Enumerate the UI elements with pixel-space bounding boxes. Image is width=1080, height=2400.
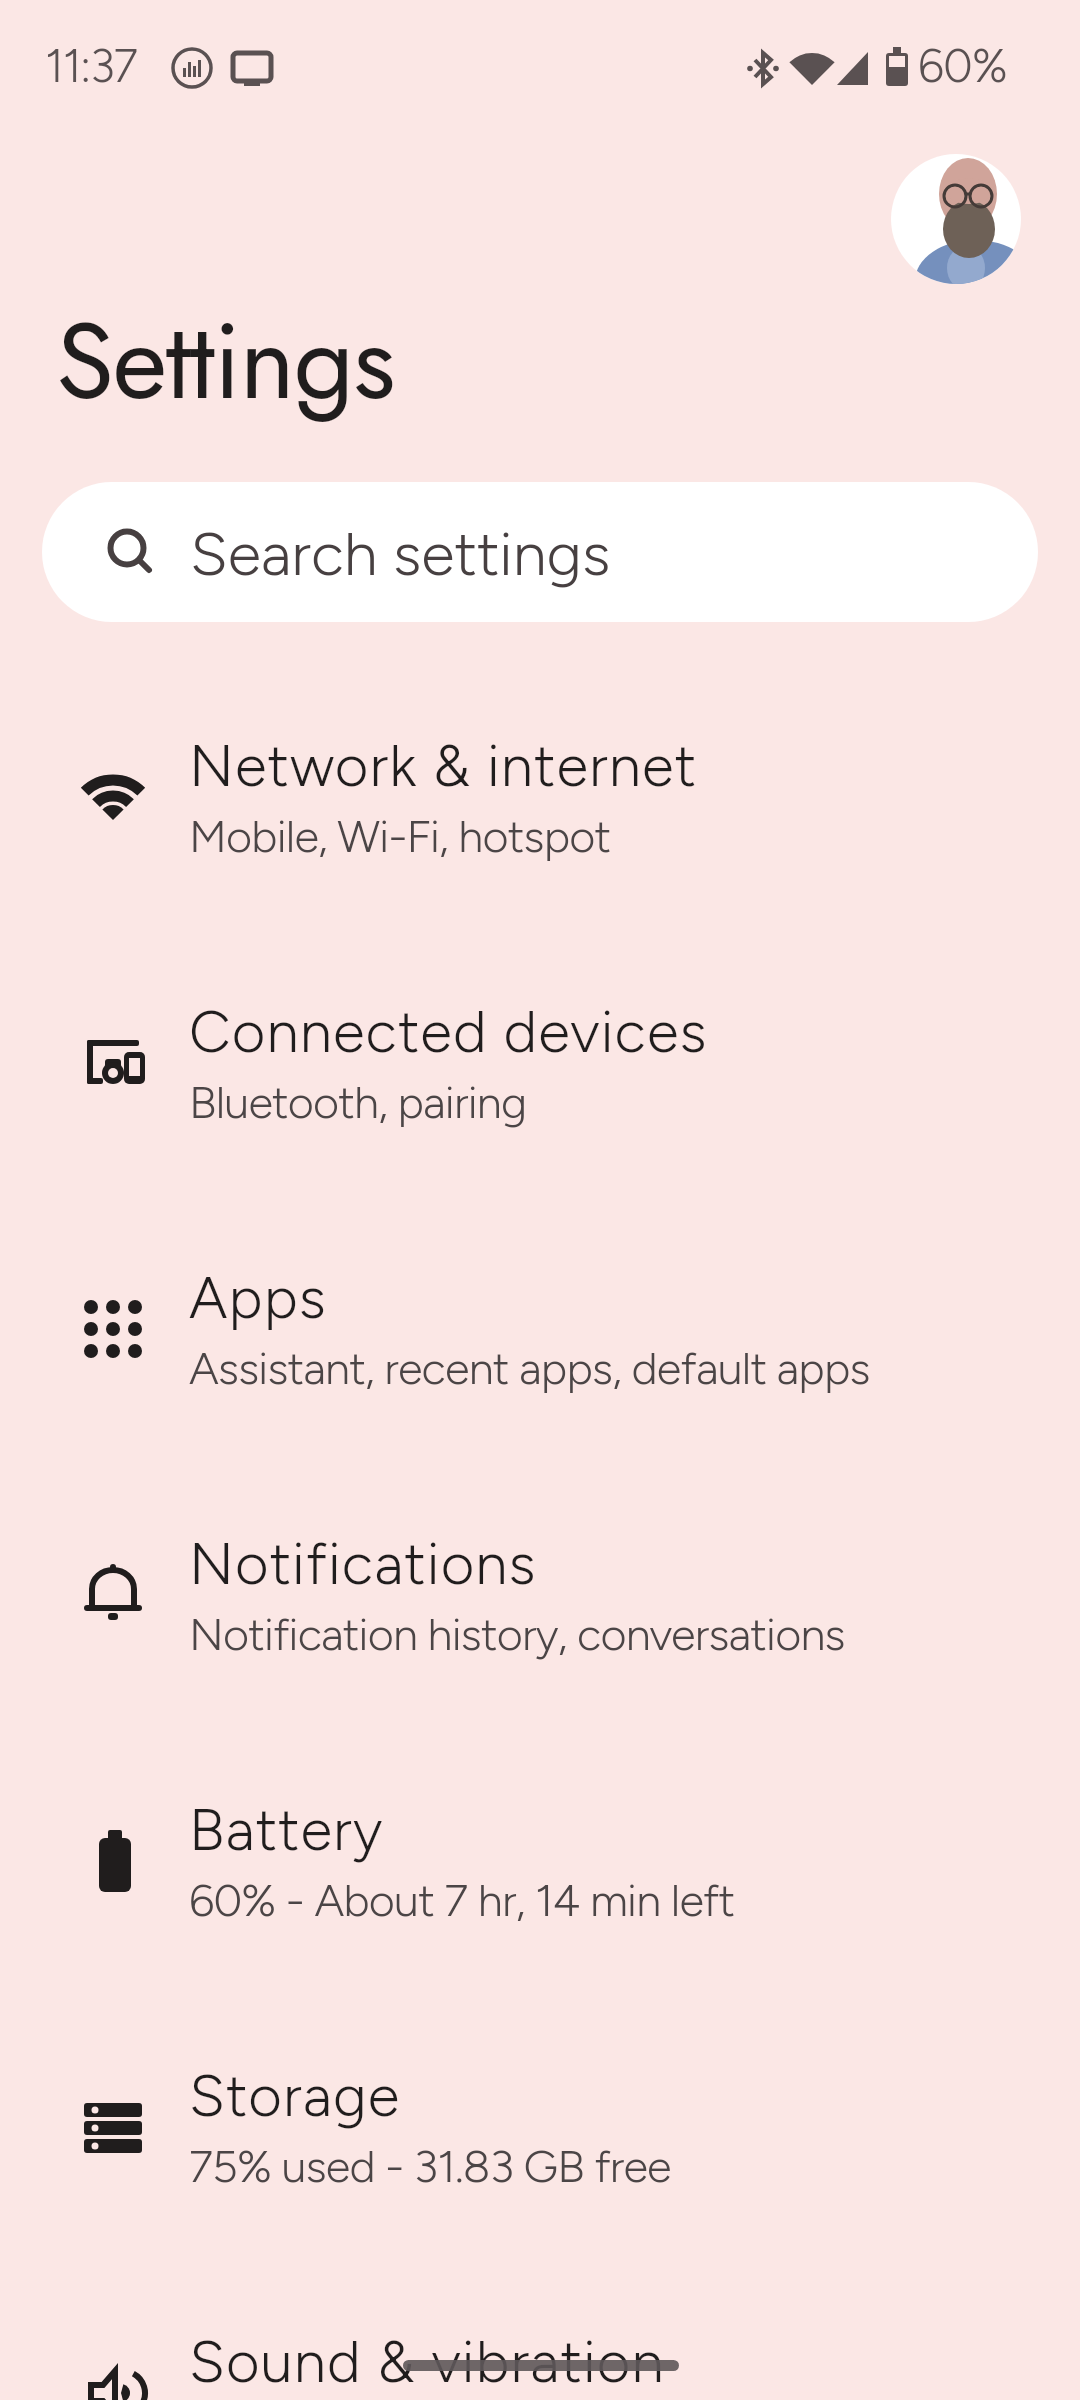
button[interactable]: Connected devices	[0, 930, 1080, 1196]
staticText: Settings	[56, 285, 394, 438]
staticText: Notification history, conversations	[189, 1607, 845, 1661]
button[interactable]: Search settings	[42, 482, 1038, 622]
staticText: Apps	[189, 1263, 327, 1333]
button[interactable]: Notifications	[0, 1462, 1080, 1728]
staticText: Mobile, Wi-Fi, hotspot	[189, 809, 611, 863]
staticText: 60%	[918, 38, 1008, 93]
staticText: 11:37	[45, 38, 137, 93]
button[interactable]: Network & internet	[0, 664, 1080, 930]
staticText: Bluetooth, pairing	[189, 1075, 527, 1129]
button[interactable]: Sound & vibration	[0, 2260, 1080, 2400]
staticText: Search settings	[190, 517, 611, 590]
staticText: Assistant, recent apps, default apps	[189, 1341, 870, 1395]
staticText: Storage	[189, 2061, 401, 2131]
staticText: Sound & vibration	[189, 2327, 665, 2397]
staticText: 60% - About 7 hr, 14 min left	[189, 1873, 735, 1927]
staticText: Network & internet	[189, 731, 698, 801]
staticText: 75% used - 31.83 GB free	[189, 2139, 671, 2193]
button[interactable]	[891, 154, 1021, 284]
staticText: Battery	[189, 1795, 384, 1865]
button[interactable]: Battery	[0, 1728, 1080, 1994]
button[interactable]: Apps	[0, 1196, 1080, 1462]
staticText: Connected devices	[189, 997, 708, 1067]
staticText: Notifications	[189, 1529, 537, 1599]
button[interactable]: Storage	[0, 1994, 1080, 2260]
